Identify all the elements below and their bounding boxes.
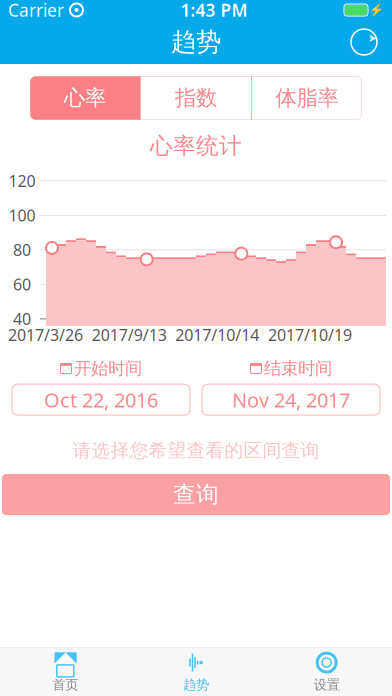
button[interactable]: 心率 xyxy=(30,76,140,120)
staticText: 40 xyxy=(13,308,31,329)
staticText: 2017/9/13 xyxy=(92,324,167,345)
staticText: ⚡ xyxy=(369,3,384,17)
button[interactable]: 刷新 xyxy=(342,20,386,64)
staticText: 心率统计 xyxy=(150,132,242,160)
button[interactable]: 设置 xyxy=(261,648,392,696)
staticText: 2017/3/26 xyxy=(8,324,83,345)
staticText: 60 xyxy=(13,274,31,295)
staticText: Oct 22, 2016 xyxy=(44,386,158,413)
staticText: 指数 xyxy=(175,85,217,111)
staticText: 2017/10/19 xyxy=(268,324,352,345)
staticText: 开始时间 xyxy=(74,358,142,379)
staticText: 80 xyxy=(13,239,31,260)
staticText: 1:43 PM xyxy=(180,0,247,21)
staticText: 120 xyxy=(8,170,35,191)
staticText: Nov 24, 2017 xyxy=(232,386,350,413)
staticText: 心率 xyxy=(64,85,106,111)
staticText: ➤ xyxy=(368,32,377,44)
staticText: ◤◥ xyxy=(54,648,76,665)
staticText: 查询 xyxy=(173,481,219,508)
button[interactable]: 查询 xyxy=(2,474,390,515)
staticText: 2017/10/14 xyxy=(175,324,259,345)
staticText: Carrier xyxy=(8,0,64,21)
button[interactable]: ◤◥ xyxy=(0,648,131,696)
button[interactable]: 开始时间 xyxy=(12,358,190,415)
button[interactable]: 体脂率 xyxy=(252,76,362,120)
button[interactable]: 趋势 xyxy=(131,648,261,696)
staticText: 趋势 xyxy=(183,677,209,693)
staticText: 请选择您希望查看的区间查询 xyxy=(72,439,319,462)
staticText: 100 xyxy=(8,205,35,226)
button[interactable]: 结束时间 xyxy=(202,358,380,415)
staticText: 结束时间 xyxy=(264,358,332,379)
staticText: 体脂率 xyxy=(275,85,338,111)
button[interactable]: 指数 xyxy=(141,76,251,120)
staticText: 设置 xyxy=(314,677,340,693)
staticText: 首页 xyxy=(52,677,78,693)
staticText: 趋势 xyxy=(171,26,221,57)
